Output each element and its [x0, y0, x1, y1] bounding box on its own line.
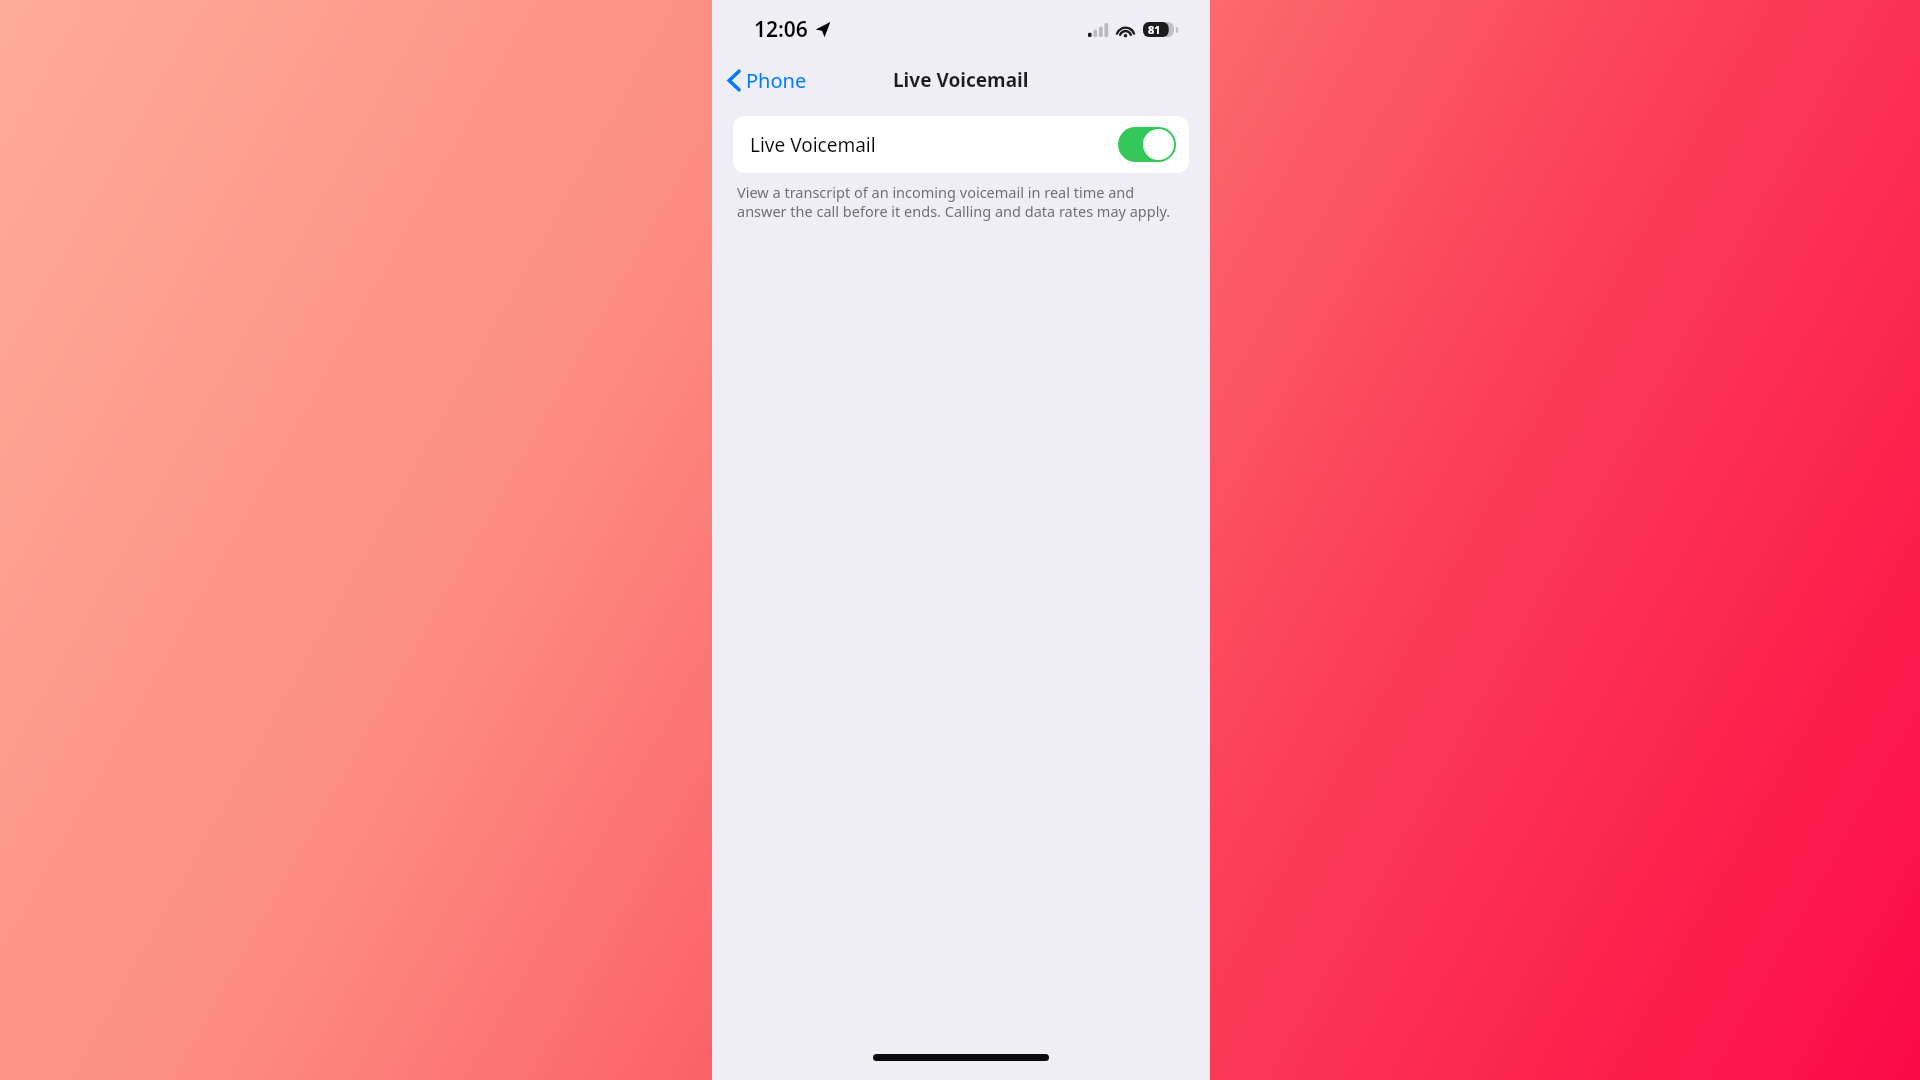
staticText: 12:06 — [754, 15, 808, 44]
button[interactable]: Phone — [722, 63, 813, 98]
staticText: Phone — [746, 67, 807, 94]
button[interactable]: Live Voicemail — [733, 116, 1189, 173]
staticText: Live Voicemail — [893, 67, 1029, 93]
staticText: Live Voicemail — [750, 132, 876, 158]
button[interactable]: Live Voicemail toggle, on — [1118, 127, 1176, 162]
staticText: View a transcript of an incoming voicema… — [737, 182, 1185, 221]
staticText: 81 — [1148, 22, 1161, 37]
